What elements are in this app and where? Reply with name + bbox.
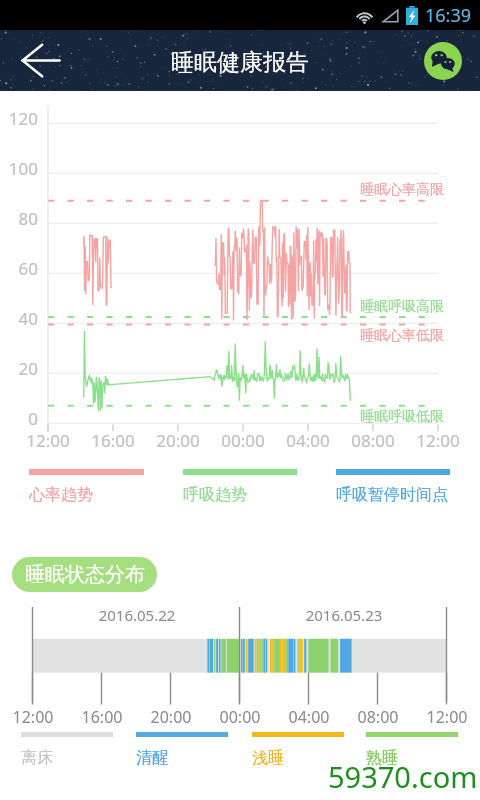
staticText: 2016.05.23 — [289, 605, 399, 625]
staticText: 浅睡 — [252, 748, 284, 768]
button[interactable]: 心率趋势 — [29, 469, 144, 505]
staticText: 睡眠心率高限 — [360, 181, 444, 199]
staticText: 睡眠呼吸高限 — [360, 298, 444, 316]
staticText: 12:00 — [0, 706, 68, 728]
staticText: 12:00 — [13, 429, 83, 452]
button[interactable]: 离床 — [21, 732, 113, 768]
staticText: 08:00 — [338, 429, 408, 452]
staticText: 00:00 — [205, 706, 275, 728]
button[interactable]: 睡眠状态分布 — [12, 557, 157, 592]
staticText: 20:00 — [136, 706, 206, 728]
staticText: 04:00 — [274, 706, 344, 728]
staticText: 2016.05.22 — [82, 605, 192, 625]
staticText: 离床 — [21, 748, 53, 768]
button[interactable]: 清醒 — [136, 732, 228, 768]
staticText: 16:39 — [425, 3, 472, 28]
staticText: 59370.com — [328, 757, 478, 796]
staticText: 睡眠呼吸低限 — [360, 408, 444, 426]
staticText: 20:00 — [143, 429, 213, 452]
button[interactable]: WeChat share — [424, 42, 462, 80]
button[interactable]: 59370.com — [328, 757, 478, 796]
button[interactable]: Back — [0, 30, 82, 91]
staticText: 16:00 — [67, 706, 137, 728]
staticText: 睡眠状态分布 — [25, 562, 145, 587]
staticText: 20 — [0, 357, 38, 380]
staticText: 16:00 — [78, 429, 148, 452]
staticText: 40 — [0, 307, 38, 330]
staticText: 120 — [0, 107, 38, 130]
staticText: 熟睡 — [366, 748, 398, 768]
staticText: 04:00 — [273, 429, 343, 452]
staticText: 00:00 — [208, 429, 278, 452]
staticText: 12:00 — [412, 706, 480, 728]
staticText: 12:00 — [403, 429, 473, 452]
staticText: 清醒 — [136, 748, 168, 768]
button[interactable]: 呼吸暂停时间点 — [336, 469, 450, 505]
staticText: 08:00 — [343, 706, 413, 728]
staticText: 睡眠心率低限 — [360, 327, 444, 345]
staticText: 呼吸趋势 — [183, 485, 247, 505]
button[interactable]: 熟睡 — [366, 732, 458, 768]
button[interactable]: 浅睡 — [252, 732, 344, 768]
staticText: 0 — [0, 407, 38, 430]
staticText: 心率趋势 — [29, 485, 93, 505]
staticText: 60 — [0, 257, 38, 280]
button[interactable]: 呼吸趋势 — [183, 469, 297, 505]
staticText: 80 — [0, 207, 38, 230]
staticText: 睡眠健康报告 — [171, 48, 309, 77]
staticText: 呼吸暂停时间点 — [336, 485, 448, 505]
staticText: 100 — [0, 157, 38, 180]
